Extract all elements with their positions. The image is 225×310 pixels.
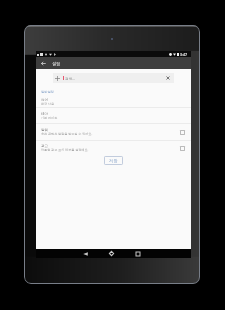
button[interactable]: Back — [39, 59, 47, 67]
button[interactable]: 언어 — [36, 97, 191, 107]
button[interactable]: 검색... — [53, 73, 174, 83]
button[interactable]: 알림 — [36, 124, 191, 140]
button[interactable]: 저장 — [104, 156, 123, 165]
staticText: 설정 — [52, 61, 61, 66]
button[interactable]: Toggle 광고 — [180, 146, 185, 151]
staticText: 언어 — [41, 98, 48, 102]
button[interactable]: Recents — [133, 249, 142, 258]
staticText: 광고 — [41, 144, 48, 148]
staticText: 추천 콘텐츠 알림을 받으실 수 있어요. — [41, 132, 93, 136]
button[interactable]: Home — [107, 249, 116, 258]
button[interactable]: Back — [81, 249, 90, 258]
staticText: 맞춤형 광고 표시 여부를 설정해요. — [41, 148, 89, 152]
staticText: 검색... — [65, 76, 76, 81]
staticText: 기본 라이트 — [41, 116, 58, 120]
button[interactable]: 테마 — [36, 108, 191, 123]
staticText: 테마 — [41, 112, 48, 116]
button[interactable]: 광고 — [36, 141, 191, 155]
staticText: 저장 — [109, 158, 118, 163]
staticText: 한국 사용 — [41, 102, 55, 106]
staticText: 일반설정 — [41, 90, 54, 94]
staticText: 알림 — [41, 128, 48, 132]
staticText: 3:47 — [180, 52, 188, 57]
button[interactable]: Toggle 알림 — [180, 130, 185, 135]
